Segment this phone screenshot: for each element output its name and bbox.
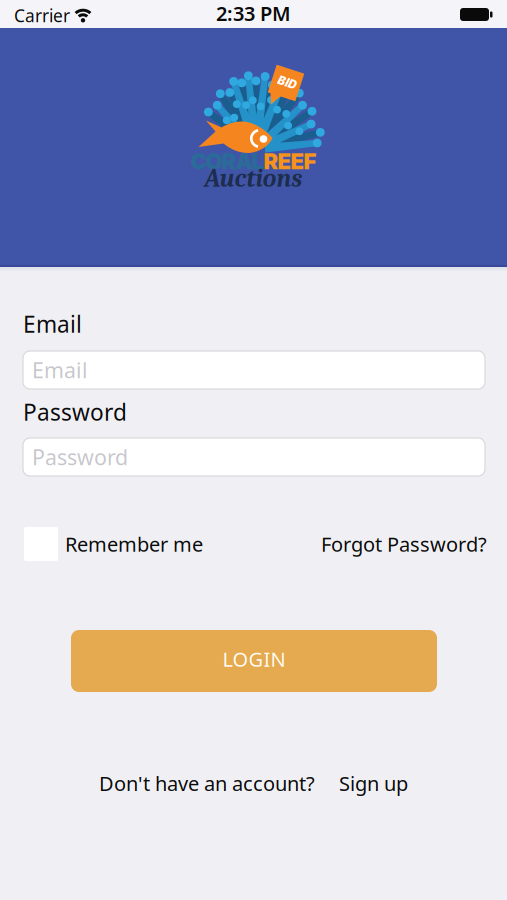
button[interactable]: Remember me [24, 527, 203, 561]
staticText: Email [23, 309, 82, 339]
staticText: Carrier [14, 4, 70, 27]
staticText: Don't have an account? [99, 770, 315, 797]
staticText: Forgot Password? [321, 531, 487, 557]
staticText: Auctions [204, 164, 302, 193]
staticText: Password [23, 397, 127, 427]
staticText: Remember me [65, 531, 203, 557]
staticText: Sign up [339, 770, 408, 797]
staticText: LOGIN [222, 646, 285, 672]
staticText: 2:33 PM [216, 0, 291, 27]
button[interactable]: Forgot Password? [321, 531, 487, 557]
button[interactable]: LOGIN [71, 630, 437, 692]
button[interactable]: Sign up [339, 770, 408, 797]
staticText: REEF [263, 148, 316, 175]
button[interactable]: Email [23, 351, 485, 389]
staticText: Password [32, 443, 128, 471]
staticText: CORAL [190, 148, 263, 175]
button[interactable]: Password [23, 438, 485, 476]
staticText: BID [277, 76, 296, 89]
staticText: Email [32, 356, 88, 384]
